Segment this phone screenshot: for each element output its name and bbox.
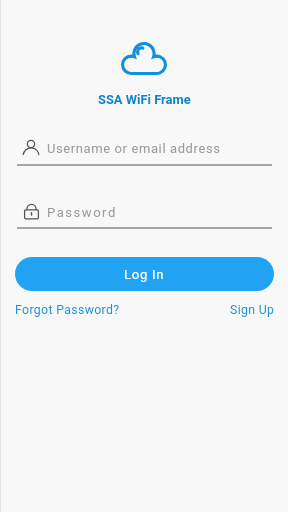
staticText: Username or email address (47, 141, 221, 156)
staticText: Log In (124, 267, 165, 282)
staticText: Password (47, 205, 117, 220)
button[interactable]: Username or email address (0, 133, 288, 167)
button[interactable]: Password (0, 197, 288, 231)
button[interactable]: Sign Up (230, 303, 275, 317)
button[interactable]: Log In (15, 257, 274, 291)
staticText: Sign Up (230, 303, 275, 317)
button[interactable]: Forgot Password? (15, 303, 120, 317)
staticText: Forgot Password? (15, 303, 120, 317)
staticText: SSA WiFi Frame (98, 92, 191, 107)
